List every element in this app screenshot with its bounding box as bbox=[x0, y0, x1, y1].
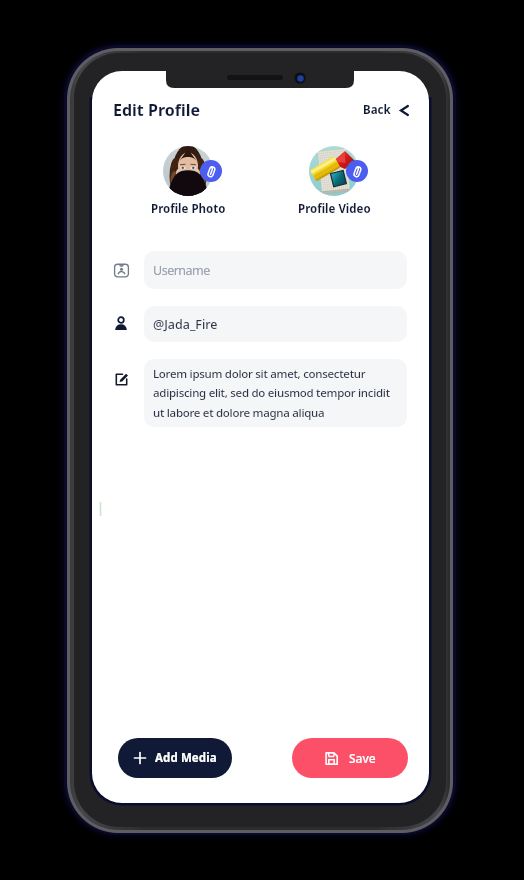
button[interactable]: Profile Video bbox=[309, 146, 359, 196]
button[interactable]: Username bbox=[144, 251, 407, 289]
button[interactable]: Back bbox=[360, 96, 412, 124]
staticText: @Jada_Fire bbox=[153, 316, 218, 333]
button[interactable]: Save bbox=[292, 738, 408, 778]
button[interactable]: Lorem ipsum dolor sit amet, consectetur … bbox=[144, 359, 407, 427]
button[interactable]: Edit profile photo bbox=[200, 160, 222, 182]
staticText: Username bbox=[153, 262, 210, 279]
staticText: Lorem ipsum dolor sit amet, consectetur … bbox=[153, 366, 390, 421]
button[interactable]: Edit profile video bbox=[346, 160, 368, 182]
button[interactable]: Profile Photo bbox=[163, 146, 213, 196]
button[interactable]: @Jada_Fire bbox=[144, 306, 407, 342]
staticText: Profile Photo bbox=[151, 201, 226, 217]
staticText: Add Media bbox=[155, 750, 217, 766]
staticText: Profile Video bbox=[298, 201, 371, 217]
staticText: Edit Profile bbox=[113, 99, 201, 121]
staticText: Save bbox=[349, 750, 376, 766]
staticText: Back bbox=[363, 102, 391, 118]
button[interactable]: Add Media bbox=[118, 738, 232, 778]
